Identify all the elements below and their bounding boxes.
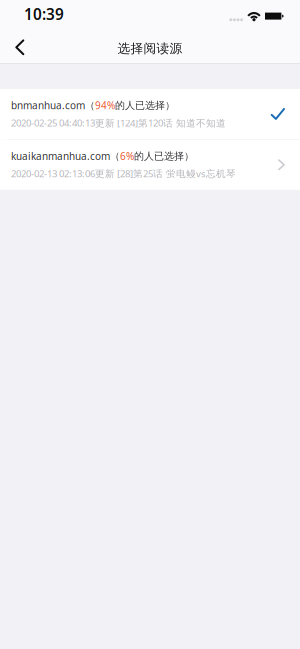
staticText: 2020-02-25 04:40:13更新 [124]第120话 知道不知道 — [11, 116, 226, 129]
staticText: 2020-02-13 02:13:06更新 [28]第25话 蛍电鳗vs忘机琴 — [11, 167, 236, 180]
button[interactable]: kuaikanmanhua.com — [0, 140, 300, 190]
staticText: 选择阅读源 — [117, 40, 182, 56]
staticText: 94% — [95, 99, 115, 112]
staticText: kuaikanmanhua.com — [11, 149, 110, 163]
staticText: 的人已选择） — [115, 99, 175, 112]
staticText: （ — [110, 150, 120, 162]
button[interactable]: bnmanhua.com — [0, 89, 300, 139]
button[interactable]: Back — [0, 28, 39, 64]
staticText: 6% — [120, 149, 134, 163]
staticText: （ — [85, 99, 95, 112]
staticText: 的人已选择） — [134, 150, 194, 162]
staticText: 10:39 — [24, 4, 64, 24]
staticText: bnmanhua.com — [11, 99, 85, 112]
